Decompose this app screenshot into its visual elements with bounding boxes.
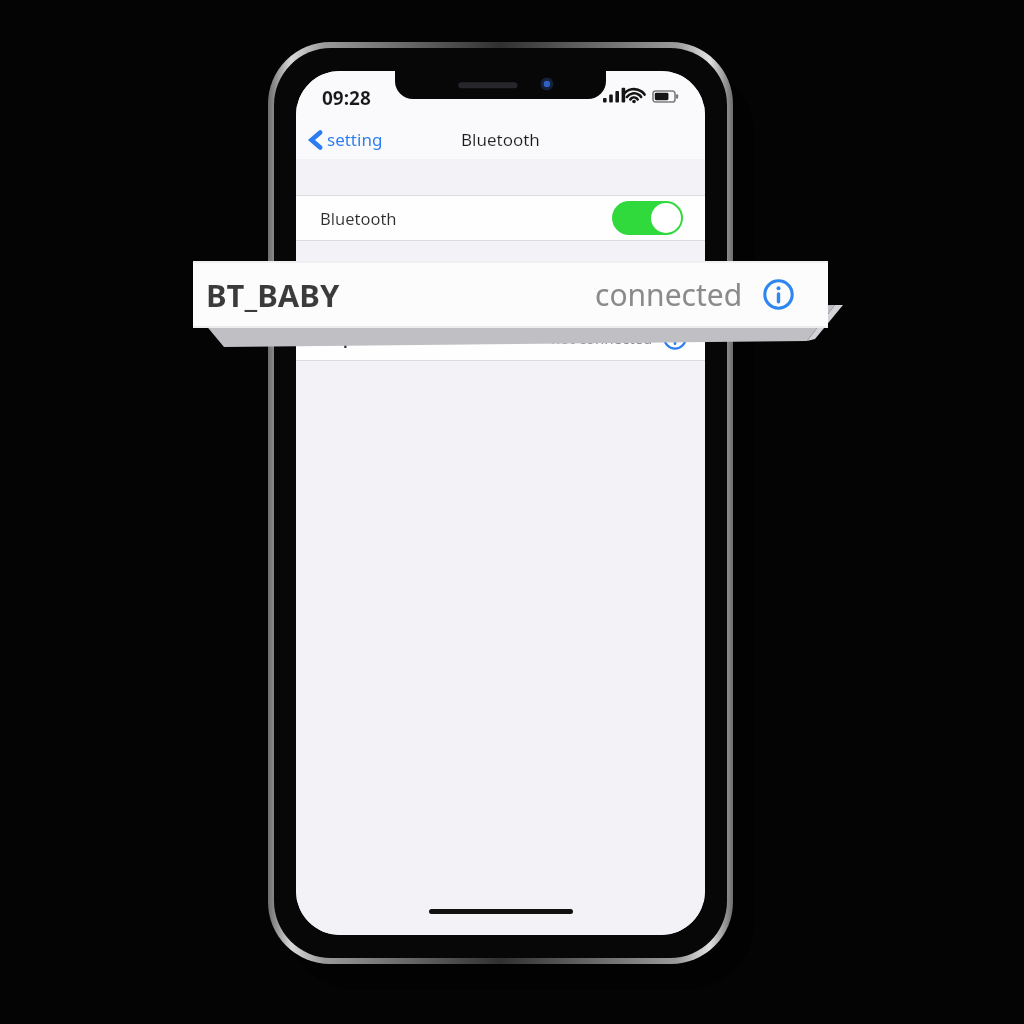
button[interactable]: setting bbox=[296, 124, 393, 155]
button[interactable]: Bluetooth on bbox=[612, 201, 683, 235]
staticText: 09:28 bbox=[322, 85, 371, 111]
staticText: setting bbox=[327, 128, 383, 151]
staticText: not connected bbox=[551, 328, 653, 348]
staticText: Bluetooth bbox=[461, 128, 540, 151]
staticText: connected bbox=[595, 274, 743, 315]
button[interactable]: More info about Airpods bbox=[663, 326, 687, 350]
button[interactable]: Airpods bbox=[296, 315, 705, 360]
staticText: BT_BABY bbox=[206, 274, 340, 316]
staticText: connected bbox=[579, 282, 653, 302]
button[interactable]: More info about BT_BABY bbox=[663, 280, 687, 304]
button[interactable]: More info about BT_BABY bbox=[763, 279, 794, 310]
button[interactable]: BT_BABY bbox=[193, 261, 828, 328]
button[interactable]: Bluetooth bbox=[296, 196, 705, 240]
button[interactable]: BT_BABY bbox=[296, 269, 705, 314]
staticText: Bluetooth bbox=[320, 207, 397, 229]
staticText: BT_BABY bbox=[320, 281, 387, 303]
staticText: Airpods bbox=[320, 327, 382, 349]
